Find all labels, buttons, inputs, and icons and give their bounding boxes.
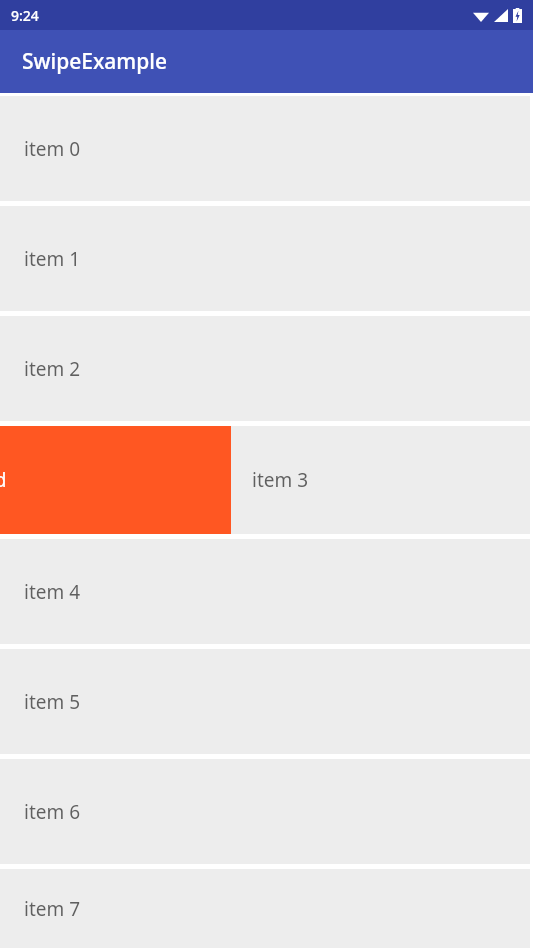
button[interactable]: item 4	[0, 539, 530, 644]
staticText: item 0	[24, 136, 81, 162]
button[interactable]: item 5	[0, 649, 530, 754]
staticText: Archived	[0, 467, 7, 493]
staticText: item 4	[24, 579, 81, 605]
button[interactable]: item 7	[0, 869, 530, 948]
button[interactable]: item 2	[0, 316, 530, 421]
staticText: item 7	[24, 896, 81, 922]
button[interactable]: item 6	[0, 759, 530, 864]
staticText: item 5	[24, 689, 81, 715]
staticText: SwipeExample	[22, 47, 167, 76]
staticText: 9:24	[11, 6, 39, 25]
staticText: item 6	[24, 799, 81, 825]
button[interactable]: Archived	[0, 426, 530, 534]
staticText: item 2	[24, 356, 81, 382]
button[interactable]: item 0	[0, 96, 530, 201]
button[interactable]: item 1	[0, 206, 530, 311]
staticText: item 3	[252, 467, 309, 493]
staticText: item 1	[24, 246, 81, 272]
